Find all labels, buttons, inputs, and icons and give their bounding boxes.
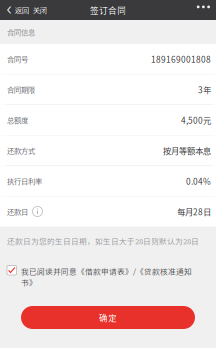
- staticText: 还款日为您的生日日期，如生日大于28日则默认为28日: [7, 235, 199, 246]
- staticText: 189169001808: [151, 53, 211, 65]
- staticText: 我已阅读并同意《借款申请表》/《贷款核准通知书》: [21, 265, 192, 288]
- staticText: 合同信息: [7, 27, 35, 37]
- staticText: 4,500元: [181, 114, 211, 126]
- staticText: 总额度: [7, 115, 28, 125]
- staticText: 确定: [99, 311, 117, 324]
- staticText: 还款日: [7, 206, 28, 217]
- staticText: 合同号: [7, 54, 28, 64]
- staticText: 关闭: [33, 5, 47, 15]
- button[interactable]: 我已阅读并同意《借款申请表》/《贷款核准通知书》: [0, 255, 216, 288]
- staticText: 3年: [198, 83, 211, 96]
- staticText: 0.04%: [186, 175, 211, 187]
- staticText: 执行日利率: [7, 176, 42, 186]
- staticText: 返回: [15, 5, 29, 15]
- button[interactable]: More options: [197, 0, 216, 20]
- staticText: 合同期限: [7, 84, 35, 95]
- button[interactable]: 确定: [21, 306, 195, 329]
- staticText: 每月28日: [177, 205, 211, 218]
- button[interactable]: 返回: [0, 0, 31, 20]
- button[interactable]: 关闭: [31, 0, 49, 20]
- staticText: 签订合同: [90, 4, 126, 16]
- staticText: 还款方式: [7, 145, 35, 156]
- staticText: 按月等额本息: [163, 144, 211, 157]
